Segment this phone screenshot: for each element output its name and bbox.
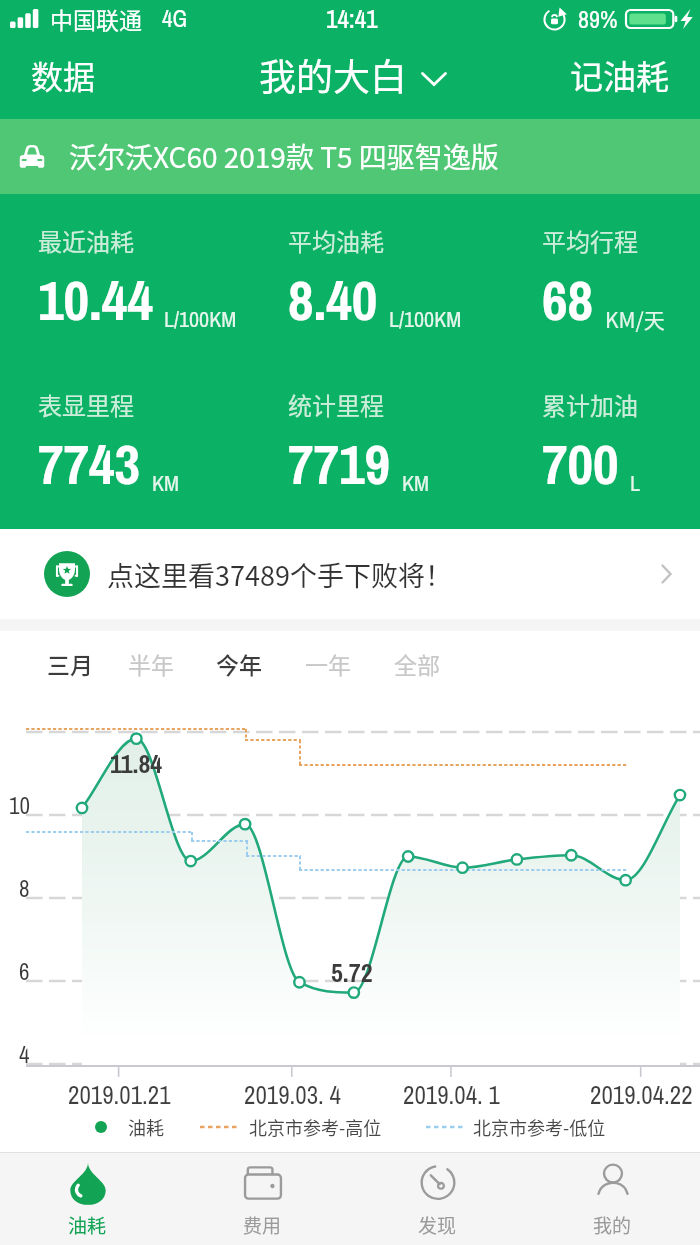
staticText: L/100KM xyxy=(389,304,462,334)
button[interactable]: 发现 xyxy=(350,1153,525,1245)
staticText: 发现 xyxy=(418,1211,457,1239)
staticText: 8.40 xyxy=(288,262,378,337)
button[interactable]: 记油耗 xyxy=(548,40,700,116)
button[interactable]: 全部 xyxy=(374,631,460,695)
staticText: 11.84 xyxy=(110,746,163,781)
staticText: 费用 xyxy=(243,1211,282,1239)
staticText: 数据 xyxy=(31,52,96,98)
staticText: 2019.04. 1 xyxy=(403,1078,500,1112)
staticText: 沃尔沃XC60 2019款 T5 四驱智逸版 xyxy=(69,136,499,177)
button[interactable]: 费用 xyxy=(175,1153,350,1245)
staticText: 表显里程 xyxy=(38,387,134,422)
staticText: 7719 xyxy=(288,426,391,501)
staticText: 最近油耗 xyxy=(38,223,134,258)
button[interactable]: 三月 xyxy=(27,631,113,695)
staticText: 我的 xyxy=(593,1211,632,1239)
button[interactable]: 点这里看37489个手下败将！ xyxy=(0,529,700,619)
staticText: 14:41 xyxy=(326,2,378,36)
staticText: 我的大白 xyxy=(259,48,407,102)
staticText: 10 xyxy=(9,790,30,821)
staticText: 5.72 xyxy=(331,955,373,990)
staticText: 记油耗 xyxy=(570,51,669,99)
staticText: 中国联通 xyxy=(50,2,142,35)
staticText: 累计加油 xyxy=(542,387,638,422)
button[interactable]: 数据 xyxy=(0,41,118,115)
staticText: 全部 xyxy=(394,647,440,680)
staticText: KM xyxy=(152,468,180,498)
staticText: 油耗 xyxy=(68,1211,107,1239)
staticText: 点这里看37489个手下败将！ xyxy=(107,555,452,594)
button[interactable]: 沃尔沃XC60 2019款 T5 四驱智逸版 xyxy=(0,119,700,194)
staticText: 2019.01.21 xyxy=(68,1078,171,1112)
staticText: KM/天 xyxy=(605,304,665,334)
staticText: 8 xyxy=(19,873,30,904)
staticText: 北京市参考-高位 xyxy=(249,1114,382,1140)
staticText: L/100KM xyxy=(164,304,237,334)
staticText: 10.44 xyxy=(38,262,153,337)
staticText: 油耗 xyxy=(128,1114,164,1140)
staticText: 三月 xyxy=(47,647,93,680)
staticText: 平均行程 xyxy=(542,223,638,258)
button[interactable]: 半年 xyxy=(108,631,194,695)
staticText: 2019.03. 4 xyxy=(244,1078,341,1112)
staticText: L xyxy=(630,468,641,498)
staticText: 89% xyxy=(578,3,618,35)
staticText: 4G xyxy=(162,3,188,34)
staticText: 半年 xyxy=(128,647,174,680)
staticText: KM xyxy=(402,468,430,498)
button[interactable]: 今年 xyxy=(196,631,282,695)
staticText: 700 xyxy=(542,426,619,501)
staticText: 2019.04.22 xyxy=(590,1078,693,1112)
staticText: 7743 xyxy=(38,426,141,501)
staticText: 平均油耗 xyxy=(288,223,384,258)
button[interactable]: 我的 xyxy=(525,1153,700,1245)
staticText: 北京市参考-低位 xyxy=(473,1114,606,1140)
staticText: 一年 xyxy=(305,647,351,680)
staticText: 68 xyxy=(542,262,594,337)
staticText: 今年 xyxy=(216,647,262,680)
button[interactable]: 我的大白 xyxy=(251,40,455,110)
staticText: 4 xyxy=(19,1039,30,1070)
button[interactable]: 一年 xyxy=(285,631,371,695)
staticText: 6 xyxy=(19,956,30,987)
button[interactable]: 油耗 xyxy=(0,1153,175,1245)
staticText: 统计里程 xyxy=(288,387,384,422)
